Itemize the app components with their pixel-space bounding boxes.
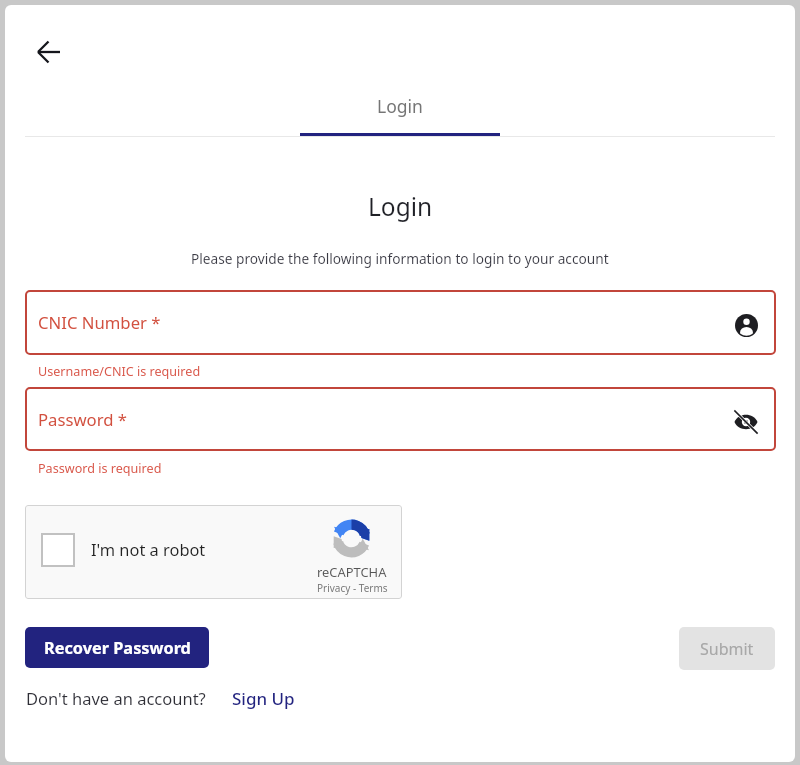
staticText: Privacy - Terms xyxy=(317,581,388,595)
button[interactable]: Submit xyxy=(679,627,775,670)
button[interactable]: Sign Up xyxy=(232,687,295,710)
staticText: CNIC Number * xyxy=(38,311,161,334)
button[interactable]: Show password xyxy=(734,410,758,434)
button[interactable]: I'm not a robot xyxy=(41,533,75,567)
button[interactable]: Recover Password xyxy=(25,627,209,668)
staticText: Sign Up xyxy=(232,687,295,710)
staticText: Password * xyxy=(38,408,128,431)
staticText: Please provide the following information… xyxy=(191,249,609,268)
staticText: reCAPTCHA xyxy=(317,563,387,581)
staticText: Recover Password xyxy=(44,637,191,659)
staticText: Login xyxy=(377,94,423,118)
staticText: I'm not a robot xyxy=(91,538,206,560)
button[interactable]: CNIC Number * xyxy=(25,290,776,355)
button[interactable]: Password * xyxy=(25,387,776,451)
button[interactable]: Back xyxy=(29,32,69,72)
staticText: Submit xyxy=(700,638,754,660)
staticText: Password is required xyxy=(38,460,162,477)
staticText: Username/CNIC is required xyxy=(38,363,201,380)
staticText: Login xyxy=(368,190,433,223)
staticText: Don't have an account? xyxy=(26,687,206,709)
other: Account xyxy=(735,314,758,337)
button[interactable]: Login xyxy=(300,79,500,136)
